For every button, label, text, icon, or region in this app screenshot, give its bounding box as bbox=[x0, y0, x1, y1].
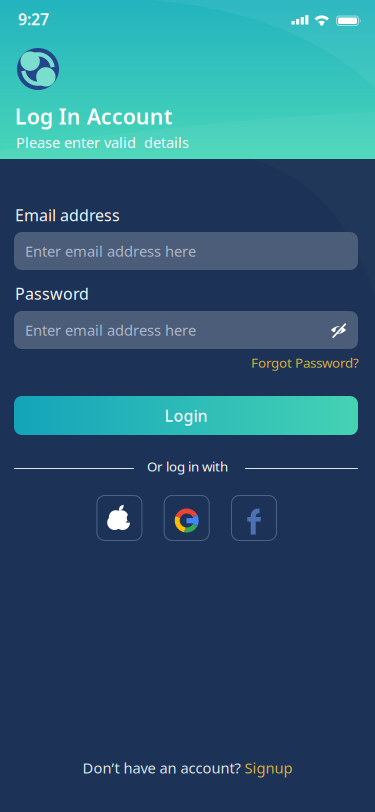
button[interactable] bbox=[96, 495, 142, 541]
staticText: Password bbox=[15, 283, 89, 304]
staticText: Or log in with bbox=[147, 457, 228, 475]
button[interactable] bbox=[164, 495, 210, 541]
button[interactable]: Login bbox=[14, 396, 358, 435]
staticText: Please enter valid details bbox=[16, 132, 189, 152]
button[interactable] bbox=[231, 495, 277, 541]
staticText: 9:27 bbox=[18, 8, 49, 30]
button[interactable]: Signup bbox=[244, 758, 292, 777]
staticText: Forgot Password? bbox=[251, 354, 359, 371]
button[interactable]: Forgot Password? bbox=[251, 354, 359, 371]
button[interactable]: Enter email address here bbox=[14, 311, 358, 349]
staticText: Login bbox=[164, 405, 207, 426]
staticText: Log In Account bbox=[15, 102, 173, 130]
staticText: Enter email address here bbox=[25, 241, 196, 261]
staticText: Signup bbox=[244, 758, 292, 777]
button[interactable]: Enter email address here bbox=[14, 232, 358, 270]
staticText: Don’t have an account? bbox=[82, 758, 240, 777]
staticText: Email address bbox=[15, 204, 120, 225]
staticText: Enter email address here bbox=[25, 320, 196, 340]
